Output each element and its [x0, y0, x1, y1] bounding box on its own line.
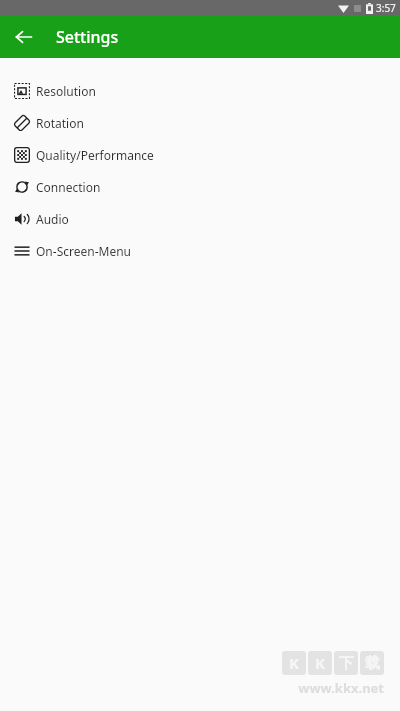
button[interactable]: On-Screen-Menu — [0, 235, 400, 267]
staticText: www.kkx.net — [298, 679, 384, 697]
button[interactable]: Audio — [0, 203, 400, 235]
button[interactable]: Connection — [0, 171, 400, 203]
staticText: 下 — [339, 654, 354, 673]
staticText: Quality/Performance — [36, 147, 154, 163]
staticText: Settings — [56, 26, 119, 48]
button[interactable]: Rotation — [0, 107, 400, 139]
staticText: Connection — [36, 179, 101, 195]
staticText: On-Screen-Menu — [36, 243, 132, 259]
staticText: K — [289, 653, 299, 673]
staticText: K — [315, 653, 325, 673]
button[interactable]: Back — [8, 21, 40, 53]
staticText: Rotation — [36, 115, 84, 131]
button[interactable]: Quality/Performance — [0, 139, 400, 171]
staticText: Resolution — [36, 83, 96, 99]
staticText: 载 — [365, 654, 380, 673]
staticText: 3:57 — [376, 1, 396, 15]
button[interactable]: Resolution — [0, 75, 400, 107]
staticText: Audio — [36, 211, 69, 227]
